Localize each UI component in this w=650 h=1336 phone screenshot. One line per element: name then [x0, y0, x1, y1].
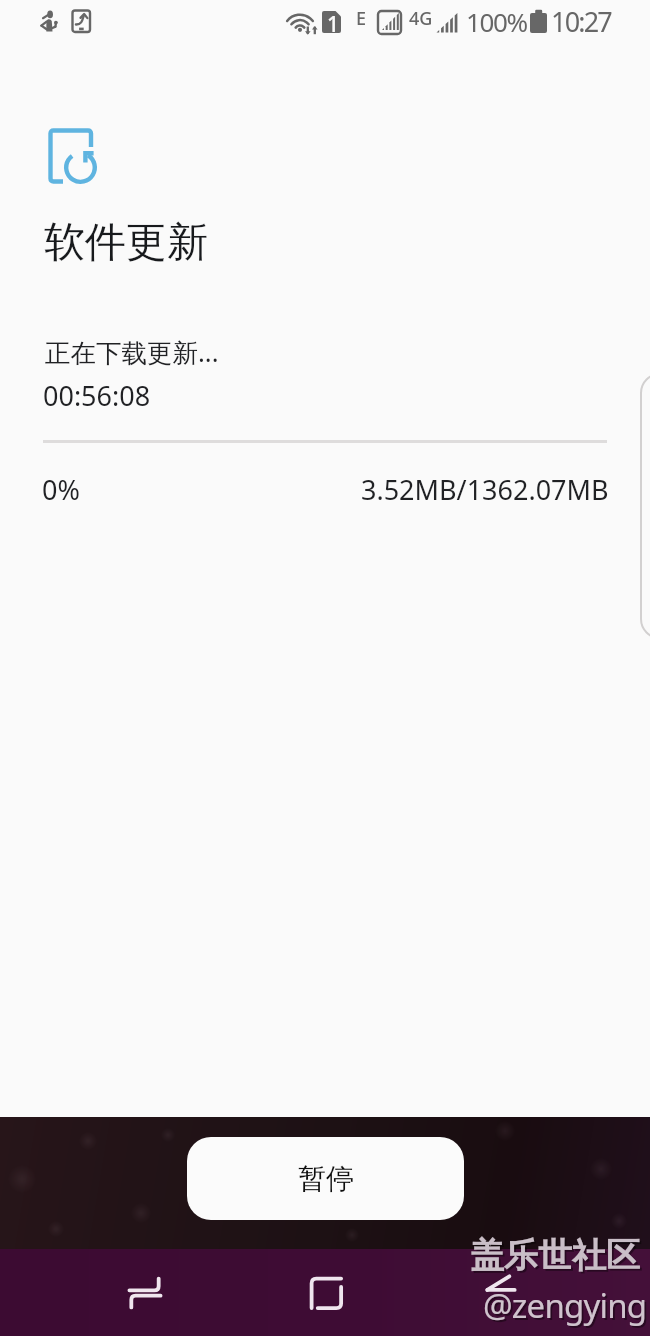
staticText: 盖乐世社区 — [470, 1234, 640, 1277]
button[interactable]: Back — [460, 1249, 542, 1336]
staticText: 3.52MB/1362.07MB — [361, 471, 609, 508]
staticText: @zengying — [483, 1283, 647, 1328]
staticText: 0% — [42, 471, 80, 508]
staticText: 100% — [466, 4, 527, 39]
staticText: 正在下载更新... — [45, 335, 219, 370]
button[interactable]: Recent apps — [104, 1249, 186, 1336]
staticText: 1 — [327, 10, 340, 39]
button[interactable]: 暂停 — [187, 1137, 464, 1220]
staticText: 盖乐世社区 — [472, 1236, 642, 1279]
staticText: E — [356, 6, 367, 31]
staticText: 10:27 — [551, 3, 612, 40]
staticText: @zengying — [485, 1285, 649, 1330]
staticText: 软件更新 — [44, 217, 208, 269]
staticText: 4G — [409, 6, 433, 31]
button[interactable]: Home — [285, 1249, 367, 1336]
staticText: 00:56:08 — [43, 377, 151, 414]
staticText: 暂停 — [298, 1161, 354, 1196]
